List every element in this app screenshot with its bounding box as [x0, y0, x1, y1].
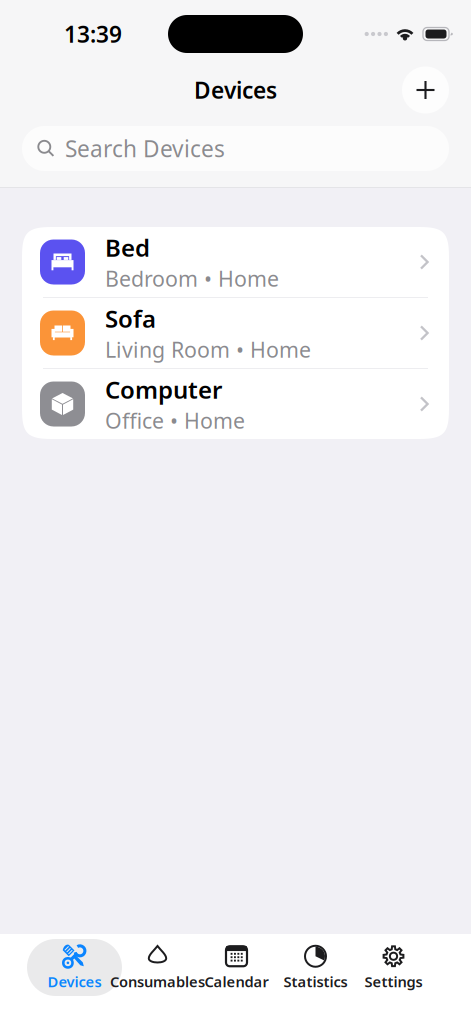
- staticText: Computer: [105, 373, 222, 405]
- button[interactable]: Bed: [22, 227, 449, 297]
- button[interactable]: Search Devices: [0, 126, 471, 171]
- button[interactable]: Add device: [402, 66, 449, 113]
- staticText: 13:39: [64, 19, 122, 49]
- button[interactable]: Calendar: [189, 939, 284, 996]
- staticText: Bedroom • Home: [105, 264, 279, 293]
- button[interactable]: Statistics: [268, 939, 363, 996]
- staticText: Bed: [105, 231, 150, 263]
- staticText: Office • Home: [105, 406, 245, 435]
- staticText: Calendar: [204, 972, 268, 991]
- staticText: Devices: [47, 972, 101, 991]
- staticText: Devices: [194, 75, 277, 105]
- staticText: Consumables: [110, 972, 205, 991]
- staticText: Search Devices: [65, 133, 225, 163]
- button[interactable]: Computer: [22, 369, 449, 439]
- button[interactable]: Sofa: [22, 298, 449, 368]
- staticText: Settings: [364, 972, 422, 991]
- button[interactable]: Consumables: [110, 939, 205, 996]
- staticText: Sofa: [105, 302, 156, 334]
- staticText: Statistics: [283, 972, 347, 991]
- button[interactable]: Settings: [346, 939, 441, 996]
- button[interactable]: Devices: [27, 939, 122, 996]
- staticText: Living Room • Home: [105, 335, 311, 364]
